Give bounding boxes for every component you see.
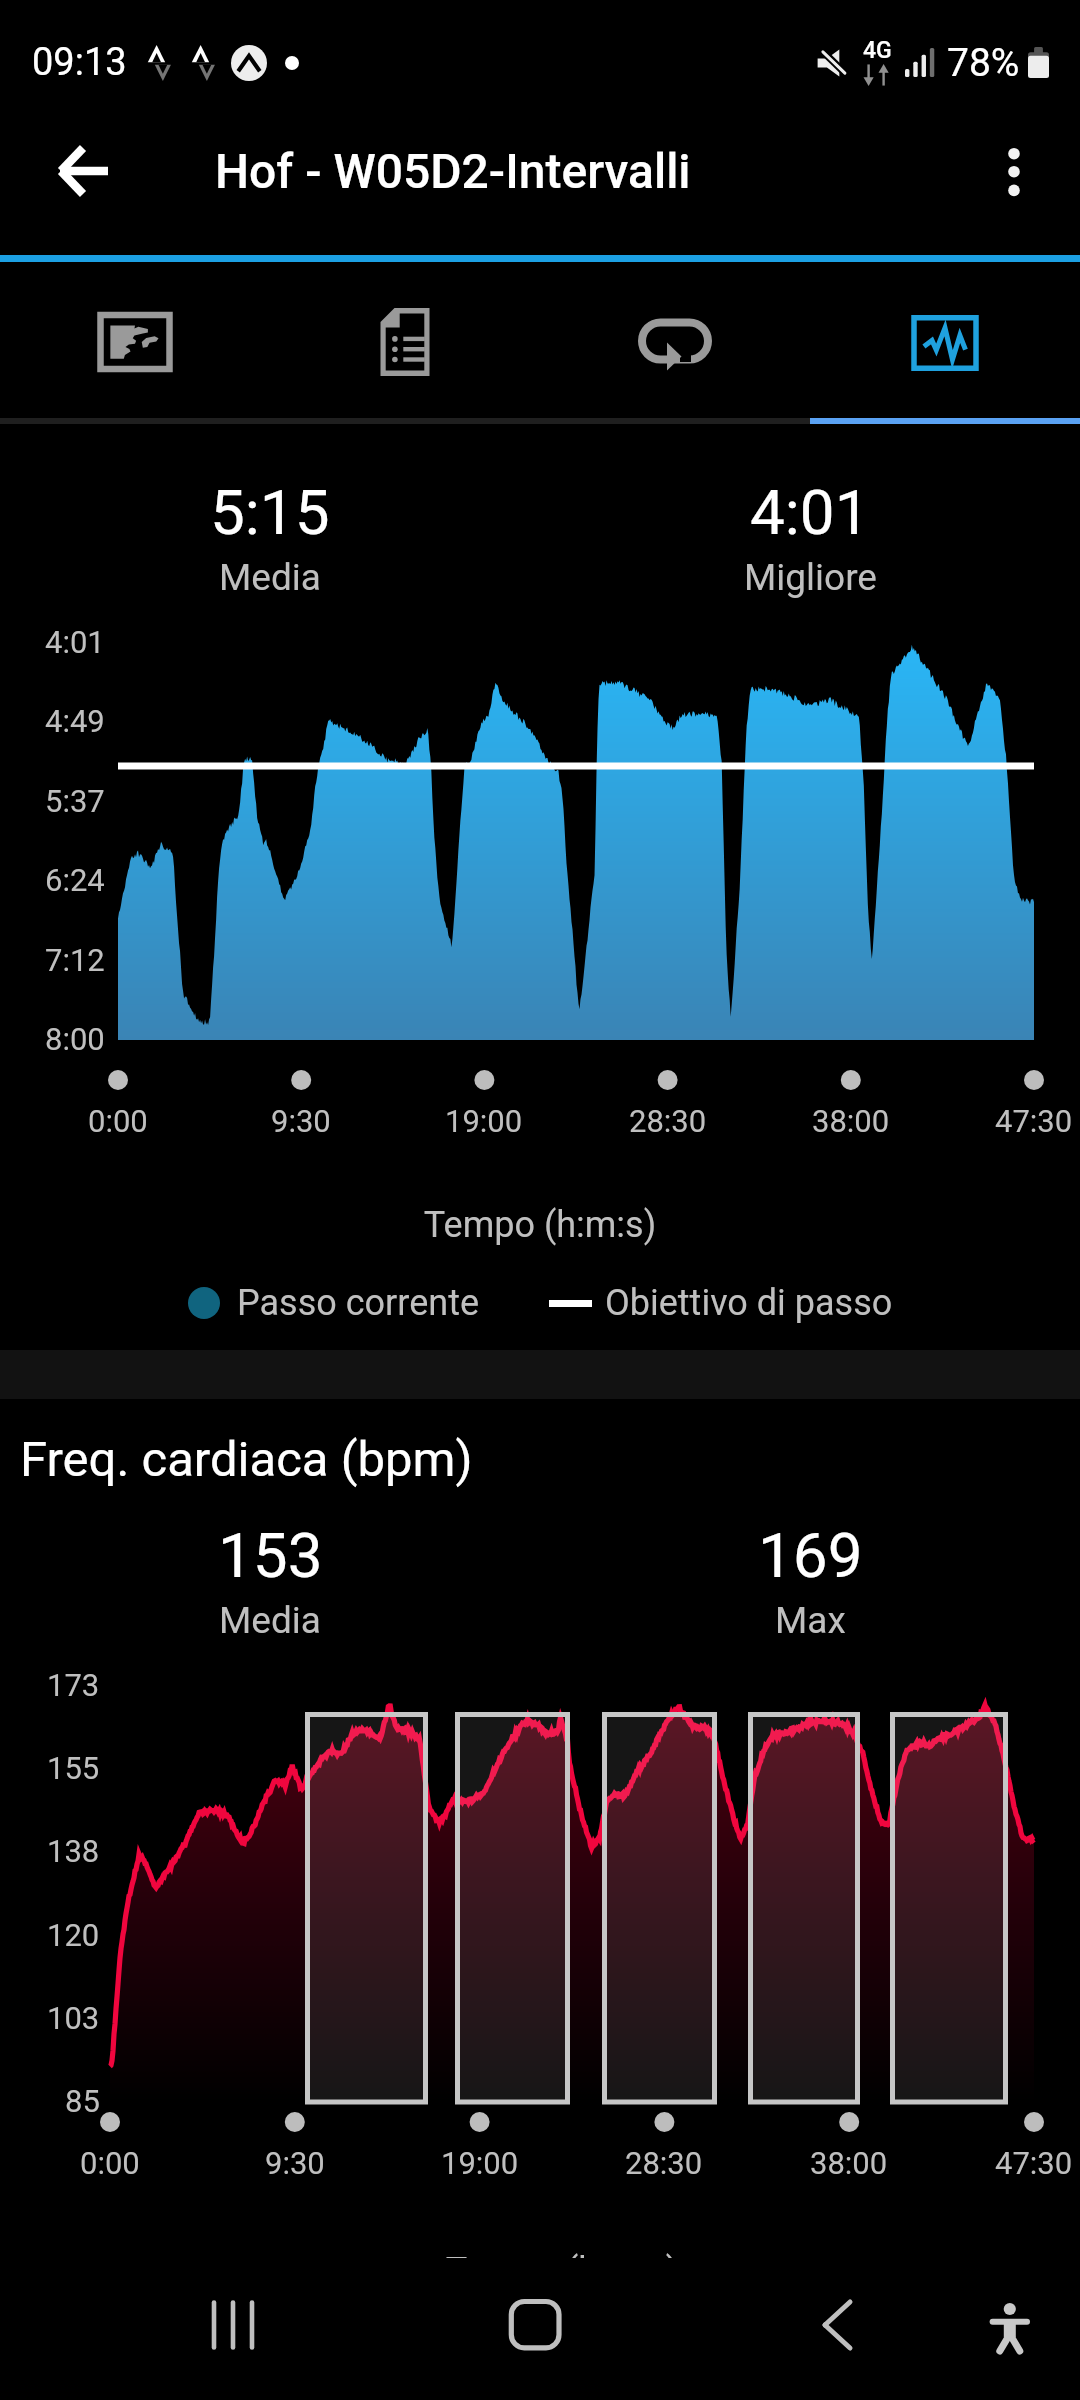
staticText: 38:00 [812,1103,890,1139]
staticText: 138 [47,1833,100,1869]
staticText: Tempo (h:m:s) [0,1204,1080,1246]
staticText: 173 [47,1667,100,1703]
button[interactable]: More options [954,111,1074,231]
staticText: 4:49 [45,703,105,739]
button[interactable]: Back [777,2280,897,2400]
staticText: 9:30 [271,1103,331,1139]
button[interactable]: Graphs [810,262,1080,418]
button[interactable]: Details [270,262,540,418]
staticText: Media [219,1599,321,1642]
staticText: 47:30 [995,2145,1073,2181]
button[interactable]: Map [0,262,270,418]
button[interactable]: Home [475,2280,595,2400]
staticText: 4G [863,37,892,64]
staticText: 85 [65,2083,100,2119]
staticText: 0:00 [80,2145,140,2181]
staticText: 103 [47,2000,100,2036]
staticText: Obiettivo di passo [605,1282,893,1324]
staticText: 28:30 [625,2145,703,2181]
staticText: 78% [947,40,1020,86]
staticText: 19:00 [441,2145,519,2181]
staticText: 5:15 [210,476,330,549]
staticText: 09:13 [32,40,127,85]
button[interactable]: Recent apps [173,2280,293,2400]
staticText: 120 [47,1917,100,1953]
staticText: 4:01 [750,476,870,549]
button[interactable]: Accessibility [950,2280,1070,2400]
staticText: 6:24 [45,862,105,898]
staticText: 0:00 [88,1103,148,1139]
staticText: Migliore [744,556,877,599]
staticText: 28:30 [629,1103,707,1139]
staticText: 7:12 [45,942,105,978]
staticText: 169 [758,1519,863,1592]
staticText: 155 [47,1750,100,1786]
staticText: 4:01 [45,624,105,660]
staticText: 8:00 [45,1021,105,1057]
button[interactable]: Laps [540,262,810,418]
staticText: Media [219,556,321,599]
staticText: 38:00 [810,2145,888,2181]
staticText: Max [775,1599,846,1642]
staticText: Passo corrente [237,1282,479,1324]
staticText: 153 [218,1519,323,1592]
staticText: 19:00 [445,1103,523,1139]
staticText: 5:37 [45,783,105,819]
staticText: Hof - W05D2-Intervalli [215,143,691,199]
staticText: Freq. cardiaca (bpm) [20,1431,473,1488]
staticText: 9:30 [265,2145,325,2181]
staticText: 47:30 [995,1103,1073,1139]
button[interactable]: Back [24,111,144,231]
staticText: Tempo (h:m:s) [22,2250,1080,2258]
